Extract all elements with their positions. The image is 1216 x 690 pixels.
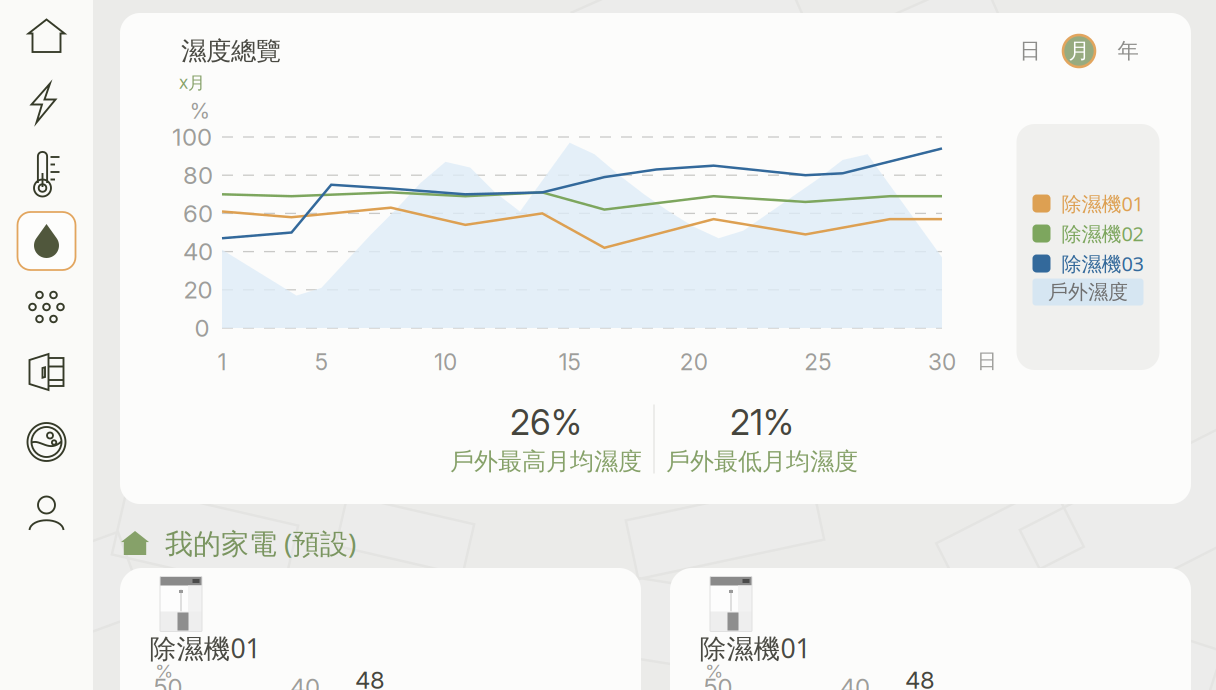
staticText: 26% — [510, 401, 582, 443]
button[interactable]: Home — [0, 3, 93, 67]
staticText: 除濕機01 — [149, 630, 260, 666]
staticText: 1 — [217, 348, 226, 376]
staticText: 除濕機03 — [1061, 250, 1143, 277]
staticText: 30 — [928, 348, 956, 376]
button[interactable]: Energy — [0, 71, 93, 135]
button[interactable]: 年 — [1103, 31, 1152, 71]
button[interactable]: Humidity — [0, 209, 93, 273]
button[interactable]: 除濕機01 — [120, 568, 641, 690]
staticText: 日 — [977, 348, 997, 374]
staticText: 20 — [680, 348, 708, 376]
staticText: 我的家電 (預設) — [165, 524, 356, 562]
staticText: 10 — [434, 348, 457, 376]
button[interactable]: 月 — [1054, 31, 1103, 71]
staticText: 5 — [315, 348, 328, 376]
staticText: 除濕機01 — [1061, 190, 1143, 217]
button[interactable]: Temperature — [0, 142, 93, 206]
staticText: % — [189, 98, 210, 124]
staticText: 40 — [183, 237, 213, 266]
staticText: 日 — [1019, 38, 1040, 64]
staticText: 100 — [172, 122, 212, 151]
staticText: 80 — [183, 161, 213, 190]
staticText: x月 — [179, 70, 205, 94]
staticText: 月 — [1068, 38, 1089, 64]
staticText: 年 — [1117, 38, 1138, 64]
staticText: 48 — [905, 665, 935, 690]
staticText: % — [155, 660, 173, 682]
staticText: 除濕機01 — [699, 630, 810, 666]
staticText: 40 — [840, 672, 870, 690]
button[interactable]: 除濕機01 — [670, 568, 1191, 690]
staticText: 濕度總覽 — [181, 35, 281, 67]
staticText: 15 — [559, 348, 581, 376]
button[interactable]: Washer — [0, 410, 93, 474]
staticText: % — [705, 660, 723, 682]
button[interactable]: Air quality — [0, 275, 93, 339]
staticText: 48 — [355, 665, 385, 690]
staticText: 戶外最高月均濕度 — [450, 446, 642, 477]
staticText: 21% — [730, 401, 794, 443]
staticText: 20 — [183, 275, 212, 304]
staticText: 50 — [153, 672, 182, 690]
button[interactable]: Account — [0, 481, 93, 545]
staticText: 戶外濕度 — [1048, 279, 1128, 305]
button[interactable]: 我的家電 (預設) — [121, 523, 371, 563]
staticText: 50 — [703, 672, 732, 690]
staticText: 60 — [183, 199, 213, 228]
staticText: 除濕機02 — [1061, 220, 1143, 247]
button[interactable]: Refrigerator — [0, 340, 93, 404]
staticText: 戶外最低月均濕度 — [666, 446, 858, 477]
staticText: 40 — [290, 672, 320, 690]
staticText: 25 — [804, 348, 831, 376]
staticText: 0 — [194, 313, 209, 342]
button[interactable]: 日 — [1005, 31, 1054, 71]
